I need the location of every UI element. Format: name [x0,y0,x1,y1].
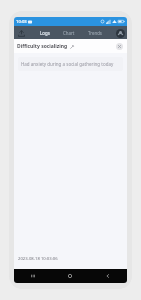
button[interactable]: Back [89,269,127,283]
staticText: Difficulty socializing [17,43,68,50]
button[interactable]: Logs [39,29,51,37]
button[interactable]: Export logs [15,27,27,39]
button[interactable]: Home [51,269,89,283]
button[interactable]: Close [114,41,124,51]
button[interactable]: Chart [62,29,76,37]
button[interactable]: Had anxiety during a social gathering to… [18,57,123,71]
button[interactable]: Edit title [68,43,75,50]
button[interactable]: Account [114,27,126,39]
button[interactable]: Trends [87,29,103,37]
staticText: Had anxiety during a social gathering to… [21,61,114,67]
staticText: Logs [40,30,50,36]
staticText: 10:03 [16,19,27,25]
staticText: Chart [63,30,75,36]
staticText: 2023-08-18 10:03:06 [18,256,58,262]
button[interactable]: Recents [14,269,51,283]
staticText: Trends [88,30,102,36]
